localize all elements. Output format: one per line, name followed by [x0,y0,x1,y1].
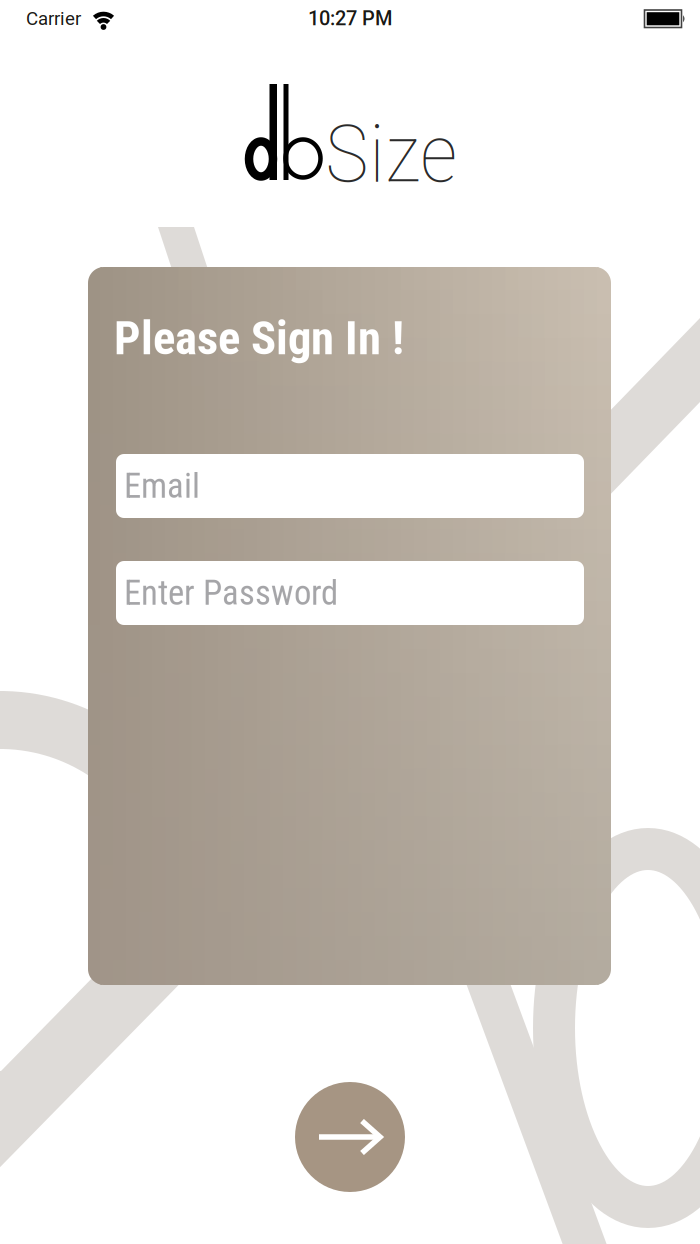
button[interactable]: Sign In [295,1082,405,1192]
button[interactable]: Enter Password [116,561,584,625]
staticText: Size [325,107,458,201]
staticText: Enter Password [124,573,338,613]
button[interactable]: Email [116,454,584,518]
staticText: Please Sign In ! [114,311,404,366]
staticText: 10:27 PM [308,7,392,30]
staticText: Carrier [26,8,81,29]
staticText: Email [124,466,200,506]
